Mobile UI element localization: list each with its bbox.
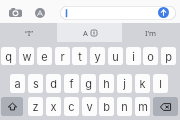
button[interactable]: h <box>99 74 114 93</box>
staticText: d <box>50 77 57 90</box>
staticText: e <box>41 50 48 63</box>
button[interactable]: Shift <box>1 97 23 116</box>
button[interactable]: q <box>1 47 16 65</box>
staticText: i <box>132 50 135 63</box>
button[interactable]: Camera <box>9 8 22 17</box>
button[interactable]: “I” <box>0 23 57 42</box>
button[interactable]: a <box>10 74 25 93</box>
staticText: k <box>139 77 146 90</box>
staticText: n <box>121 100 128 113</box>
staticText: b <box>103 100 110 113</box>
button[interactable]: Send <box>158 7 169 18</box>
staticText: p <box>165 50 172 63</box>
button[interactable]: p <box>161 47 176 65</box>
button[interactable]: k <box>135 74 150 93</box>
staticText: r <box>60 50 65 63</box>
button[interactable]: g <box>81 74 96 93</box>
staticText: A <box>83 28 88 38</box>
button[interactable]: i <box>126 47 141 65</box>
staticText: w <box>22 50 32 63</box>
staticText: f <box>69 77 74 90</box>
button[interactable]: t <box>72 47 87 65</box>
button[interactable]: r <box>55 47 70 65</box>
staticText: o <box>147 50 154 63</box>
button[interactable]: A <box>57 23 122 42</box>
button[interactable]: o <box>143 47 158 65</box>
staticText: v <box>86 100 93 113</box>
staticText: z <box>32 100 39 113</box>
button[interactable]: d <box>46 74 61 93</box>
button[interactable] <box>60 6 176 20</box>
button[interactable]: l <box>153 74 168 93</box>
button[interactable]: App Store <box>35 8 45 18</box>
button[interactable]: n <box>117 97 132 116</box>
button[interactable]: I'm <box>122 23 180 42</box>
button[interactable]: v <box>82 97 97 116</box>
staticText: x <box>50 100 57 113</box>
staticText: g <box>85 77 92 90</box>
staticText: h <box>103 77 110 90</box>
staticText: m <box>138 100 148 113</box>
staticText: j <box>123 77 126 90</box>
button[interactable]: b <box>99 97 114 116</box>
button[interactable]: j <box>117 74 132 93</box>
staticText: I'm <box>145 28 157 38</box>
button[interactable]: e <box>37 47 52 65</box>
staticText: s <box>33 77 39 90</box>
staticText: a <box>14 77 21 90</box>
button[interactable]: x <box>46 97 61 116</box>
staticText: q <box>5 50 12 63</box>
button[interactable]: f <box>64 74 79 93</box>
button[interactable]: w <box>19 47 34 65</box>
button[interactable]: m <box>135 97 150 116</box>
staticText: t <box>78 50 82 63</box>
staticText: y <box>94 50 101 63</box>
button[interactable]: s <box>28 74 43 93</box>
button[interactable]: z <box>28 97 43 116</box>
button[interactable]: Backspace <box>153 97 178 116</box>
button[interactable]: y <box>90 47 105 65</box>
staticText: c <box>68 100 75 113</box>
button[interactable]: u <box>108 47 123 65</box>
button[interactable]: c <box>64 97 79 116</box>
staticText: u <box>112 50 119 63</box>
staticText: “I” <box>25 28 33 38</box>
staticText: l <box>159 77 162 90</box>
